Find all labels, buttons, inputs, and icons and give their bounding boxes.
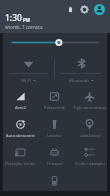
staticText: Autoobracanie	[6, 133, 35, 139]
staticText: Avio2	[15, 105, 26, 111]
button[interactable]: Avio2	[3, 86, 37, 114]
button[interactable]: Battery saver	[37, 170, 72, 191]
button[interactable]: Brightness	[3, 33, 107, 52]
staticText: Lokalizacja	[79, 133, 101, 139]
staticText: Profile dźwięku	[75, 161, 105, 167]
button[interactable]: Wi-Fi	[3, 52, 54, 86]
staticText: 1:30	[5, 12, 22, 24]
button[interactable]: Przesyłaj ekran	[3, 142, 37, 170]
button[interactable]: Latarka	[37, 114, 72, 142]
staticText: wtorek, 7 czerwca	[5, 24, 43, 30]
button[interactable]: Połączenie danych	[37, 86, 72, 114]
staticText: Latarka	[47, 133, 62, 139]
staticText: Tryb samolotowy	[73, 105, 107, 111]
button[interactable]: Bluetooth	[55, 52, 107, 86]
staticText: Hotspot	[47, 161, 63, 167]
button[interactable]: User account	[94, 4, 105, 15]
staticText: Wi-Fi	[21, 77, 31, 83]
staticText: Przesyłaj ekran	[5, 161, 35, 167]
button[interactable]: Autoobracanie	[3, 114, 37, 142]
button[interactable]: Tryb samolotowy	[72, 86, 107, 114]
button[interactable]: Battery status	[66, 5, 75, 14]
button[interactable]: Settings	[80, 5, 89, 14]
staticText: Połączenie danych	[37, 105, 72, 111]
button[interactable]: Profile dźwięku	[72, 142, 107, 170]
staticText: Bluetooth	[69, 77, 89, 83]
button[interactable]: Lokalizacja	[72, 114, 107, 142]
button[interactable]: Hotspot	[37, 142, 72, 170]
staticText: PM	[23, 17, 31, 23]
